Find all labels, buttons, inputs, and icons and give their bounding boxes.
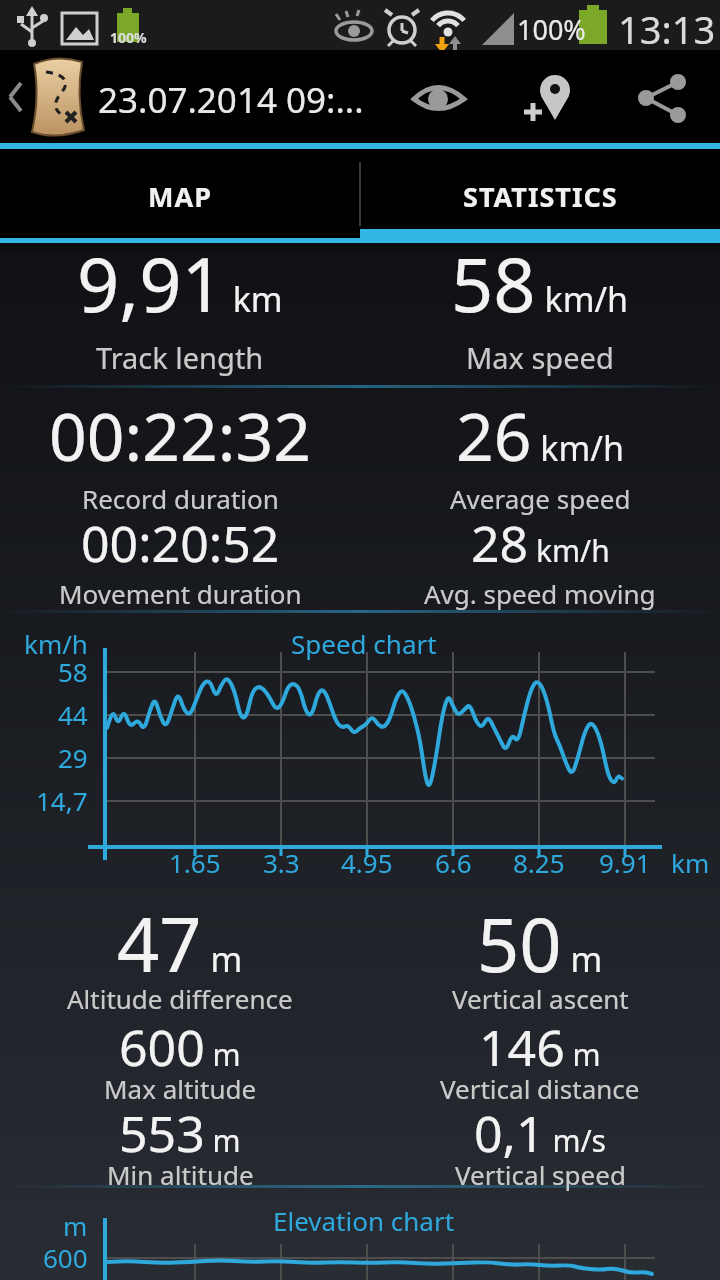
button[interactable]: MAP xyxy=(0,149,360,243)
button[interactable] xyxy=(0,50,390,143)
staticText: 47 m xyxy=(117,893,243,994)
button[interactable] xyxy=(505,60,580,135)
staticText: 146 m xyxy=(479,1013,601,1081)
staticText: 26 km/h xyxy=(456,390,624,480)
staticText: MAP xyxy=(148,178,212,215)
staticText: 0,1 m/s xyxy=(474,1099,606,1167)
staticText: 8.25 xyxy=(513,845,565,880)
staticText: 28 km/h xyxy=(471,509,610,577)
button[interactable] xyxy=(615,60,690,135)
staticText: Min altitude xyxy=(107,1157,254,1192)
staticText: 9,91 km xyxy=(77,233,283,334)
staticText: 58 km/h xyxy=(451,233,629,334)
staticText: Record duration xyxy=(82,481,279,516)
staticText: Avg. speed moving xyxy=(424,576,656,611)
staticText: 50 m xyxy=(477,893,603,994)
staticText: 29 xyxy=(58,740,88,775)
staticText: Movement duration xyxy=(59,576,302,611)
staticText: Track length xyxy=(96,338,264,377)
staticText: 100% xyxy=(517,11,586,48)
staticText: 00:20:52 xyxy=(81,509,280,577)
button[interactable] xyxy=(395,60,470,135)
staticText: 100% xyxy=(110,28,147,47)
staticText: Max altitude xyxy=(104,1071,257,1106)
button[interactable]: STATISTICS xyxy=(360,149,720,243)
staticText: Speed chart xyxy=(291,626,437,661)
staticText: Elevation chart xyxy=(273,1203,455,1238)
staticText: STATISTICS xyxy=(463,178,618,215)
staticText: 600 xyxy=(43,1240,88,1275)
staticText: 3.3 xyxy=(263,845,300,880)
staticText: Vertical speed xyxy=(455,1157,626,1192)
staticText: 600 m xyxy=(119,1013,241,1081)
staticText: 58 xyxy=(58,654,88,689)
staticText: 14,7 xyxy=(36,783,88,818)
staticText: 13:13 xyxy=(618,3,716,53)
staticText: 23.07.2014 09:... xyxy=(98,76,364,124)
staticText: 1.65 xyxy=(169,845,221,880)
staticText: Vertical ascent xyxy=(452,981,629,1016)
staticText: 9.91 xyxy=(599,845,651,880)
staticText: km/h xyxy=(24,626,88,661)
staticText: 6.6 xyxy=(435,845,472,880)
staticText: m xyxy=(63,1208,88,1243)
staticText: 00:22:32 xyxy=(49,390,311,480)
staticText: Vertical distance xyxy=(440,1071,640,1106)
staticText: 4.95 xyxy=(341,845,393,880)
staticText: Altitude difference xyxy=(67,981,293,1016)
staticText: km xyxy=(671,845,710,880)
staticText: Max speed xyxy=(466,338,614,377)
staticText: Average speed xyxy=(450,481,631,516)
staticText: 553 m xyxy=(119,1099,241,1167)
staticText: 44 xyxy=(58,697,88,732)
